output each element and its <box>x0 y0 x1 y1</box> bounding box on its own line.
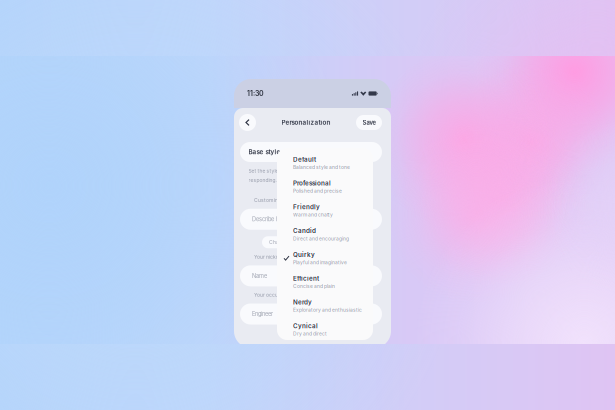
staticText: Name <box>252 272 267 279</box>
staticText: Base style <box>248 148 280 156</box>
staticText: Efficient <box>293 275 319 282</box>
staticText: Concise and plain <box>293 283 335 289</box>
staticText: Your nickname <box>254 254 289 260</box>
staticText: Set the style and tone Claude uses when <box>248 168 345 174</box>
button[interactable]: Quirky <box>277 246 373 270</box>
staticText: Warm and chatty <box>293 212 333 218</box>
staticText: Candid <box>293 227 316 235</box>
button[interactable]: Professional <box>277 175 373 199</box>
staticText: Cynical <box>293 322 318 330</box>
staticText: Dry and direct <box>293 331 327 337</box>
button[interactable]: Friendly <box>277 199 373 222</box>
button[interactable]: Candid <box>277 222 373 246</box>
staticText: Quirky <box>293 251 315 258</box>
staticText: Nerdy <box>293 298 312 306</box>
staticText: Describe how Claude should respond <box>252 216 346 223</box>
staticText: Balanced style and tone <box>293 164 350 170</box>
staticText: Save <box>362 119 375 126</box>
staticText: Personalization <box>281 119 330 126</box>
staticText: Exploratory and enthusiastic <box>293 307 362 313</box>
staticText: Your occupation <box>254 292 293 298</box>
staticText: Custom instructions <box>254 197 303 203</box>
staticText: Chatty <box>269 239 286 245</box>
staticText: Playful and imaginative <box>293 259 347 265</box>
staticText: Professional <box>293 179 331 187</box>
staticText: 11:30 <box>247 89 264 98</box>
button[interactable]: Back <box>239 114 256 131</box>
staticText: Polished and precise <box>293 188 342 194</box>
staticText: responding. <box>248 177 276 183</box>
staticText: Engineer <box>252 311 273 317</box>
staticText: Direct and encouraging <box>293 236 349 242</box>
button[interactable]: Efficient <box>277 270 373 294</box>
staticText: Friendly <box>293 203 320 211</box>
button[interactable]: Cynical <box>277 318 373 341</box>
staticText: Default <box>293 156 316 163</box>
button[interactable]: Default <box>277 151 373 175</box>
button[interactable]: Nerdy <box>277 294 373 318</box>
button[interactable]: Save <box>356 115 382 130</box>
